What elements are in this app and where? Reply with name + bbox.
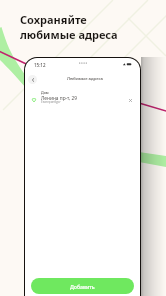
staticText: Ленина пр-т, 29: [41, 95, 78, 102]
staticText: 15:12: [34, 62, 46, 68]
button[interactable]: Добавить: [31, 278, 134, 294]
button[interactable]: Back: [28, 75, 37, 84]
staticText: Дом: [41, 90, 49, 95]
staticText: Любимые адреса: [67, 76, 103, 82]
button[interactable]: Remove: [127, 97, 134, 104]
staticText: Добавить: [70, 283, 95, 290]
staticText: Екатеринбург: [41, 100, 61, 104]
staticText: Сохраняйте любимые адреса: [20, 12, 118, 42]
button[interactable]: Дом: [25, 87, 140, 107]
